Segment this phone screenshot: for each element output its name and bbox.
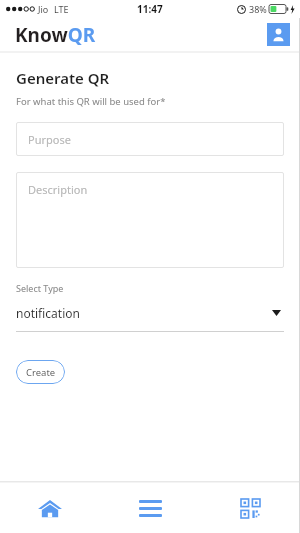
- staticText: Generate QR: [16, 68, 110, 88]
- button[interactable]: notification: [16, 303, 284, 332]
- button[interactable]: Description: [16, 172, 284, 268]
- staticText: 38%: [249, 3, 267, 15]
- button[interactable]: Purpose: [16, 122, 284, 156]
- button[interactable]: Create: [16, 360, 65, 384]
- button[interactable]: Home: [0, 483, 100, 533]
- staticText: Jio: [38, 3, 49, 15]
- staticText: Description: [28, 182, 88, 197]
- button[interactable]: KnowQR: [15, 22, 96, 48]
- button[interactable]: Menu: [100, 483, 200, 533]
- staticText: For what this QR will be used for*: [16, 95, 166, 108]
- staticText: Create: [26, 366, 56, 379]
- staticText: notification: [16, 305, 80, 321]
- staticText: 11:47: [137, 2, 163, 16]
- button[interactable]: Profile: [267, 23, 290, 46]
- staticText: KnowQR: [15, 22, 96, 48]
- staticText: Purpose: [28, 132, 71, 147]
- staticText: LTE: [54, 3, 69, 15]
- button[interactable]: Scan QR code: [200, 483, 300, 533]
- staticText: Select Type: [16, 282, 64, 294]
